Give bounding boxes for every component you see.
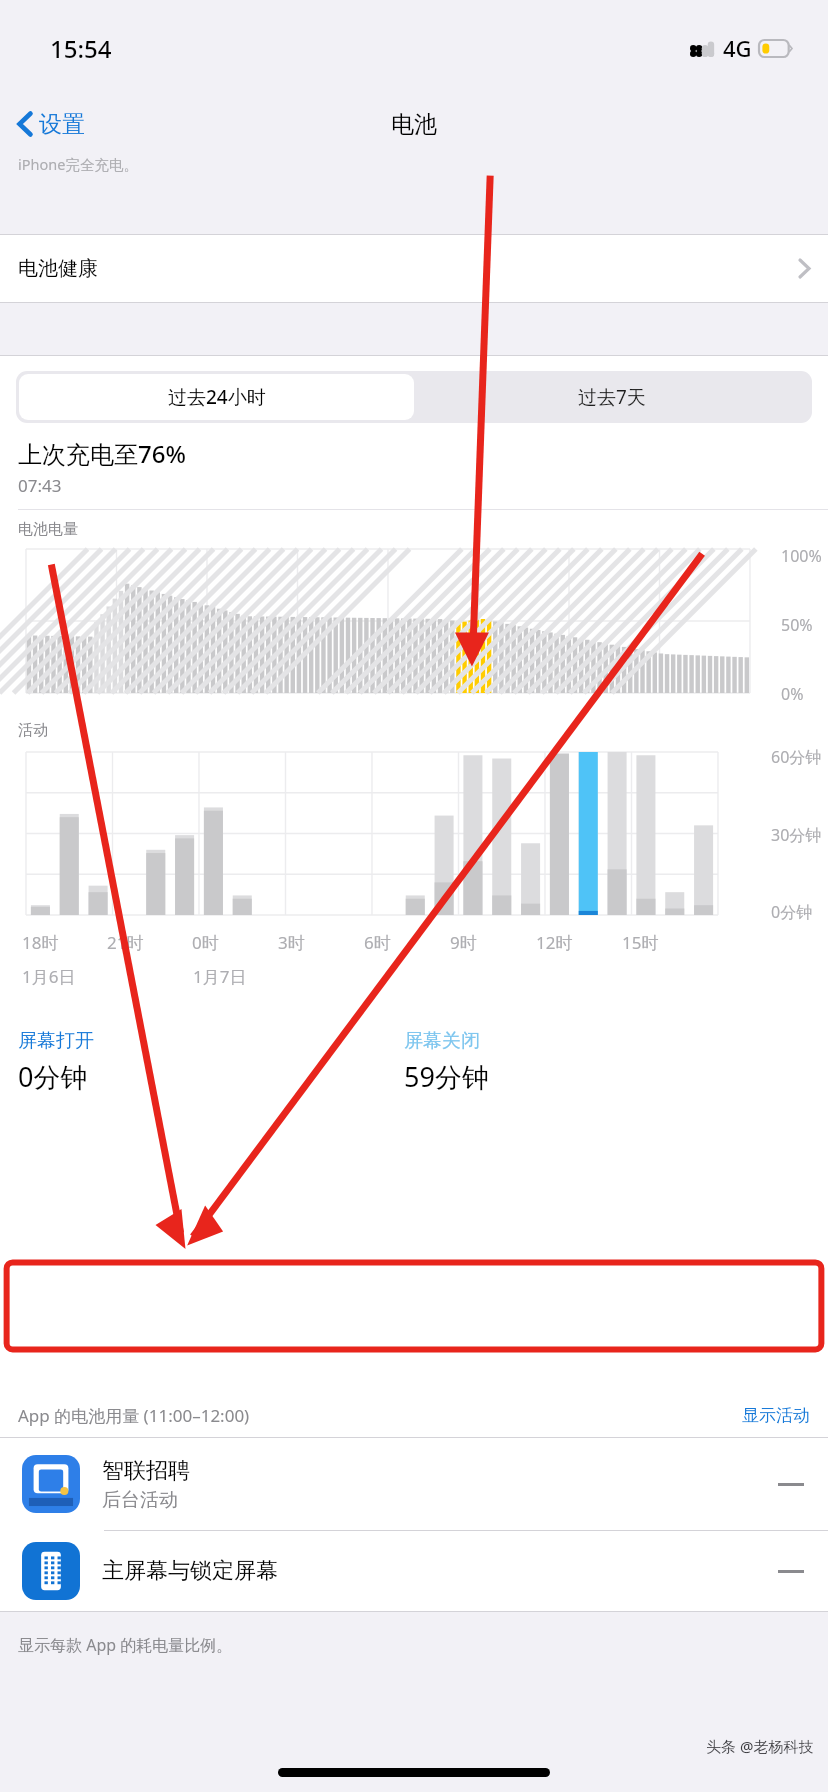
staticText: 电池电量 bbox=[18, 520, 78, 539]
staticText: 0时 bbox=[192, 931, 219, 954]
staticText: 智联招聘 bbox=[102, 1457, 190, 1485]
button[interactable]: 主屏幕与锁定屏幕 bbox=[0, 1531, 828, 1611]
staticText: 50% bbox=[781, 614, 813, 636]
staticText: 电池健康 bbox=[18, 256, 98, 281]
staticText: 15时 bbox=[622, 931, 659, 954]
button[interactable]: 设置 bbox=[0, 88, 95, 160]
staticText: 过去7天 bbox=[578, 384, 646, 410]
staticText: 59分钟 bbox=[404, 1058, 489, 1095]
staticText: 屏幕关闭 bbox=[404, 1029, 480, 1053]
staticText: 3时 bbox=[278, 931, 305, 954]
staticText: iPhone完全充电。 bbox=[18, 154, 138, 174]
staticText: 1月7日 bbox=[193, 965, 247, 988]
staticText: 显示每款 App 的耗电量比例。 bbox=[18, 1634, 233, 1656]
staticText: 18时 bbox=[22, 931, 59, 954]
staticText: 9时 bbox=[450, 931, 477, 954]
staticText: 1月6日 bbox=[22, 965, 76, 988]
staticText: 6时 bbox=[364, 931, 391, 954]
button[interactable]: 智联招聘 bbox=[0, 1438, 828, 1530]
staticText: 60分钟 bbox=[771, 746, 822, 768]
staticText: 21时 bbox=[107, 931, 144, 954]
staticText: 上次充电至76% bbox=[18, 437, 186, 470]
staticText: 活动 bbox=[18, 721, 48, 740]
button[interactable]: 显示活动 bbox=[742, 1405, 810, 1426]
staticText: 显示活动 bbox=[742, 1405, 810, 1426]
staticText: App 的电池用量 (11:00–12:00) bbox=[18, 1404, 250, 1427]
staticText: 15:54 bbox=[50, 32, 112, 65]
staticText: 后台活动 bbox=[102, 1488, 178, 1512]
staticText: 电池 bbox=[391, 110, 437, 139]
staticText: 过去24小时 bbox=[168, 384, 266, 410]
staticText: 屏幕打开 bbox=[18, 1029, 94, 1053]
staticText: 0分钟 bbox=[771, 901, 813, 923]
staticText: 头条 @老杨科技 bbox=[706, 1736, 814, 1756]
staticText: 0分钟 bbox=[18, 1058, 88, 1095]
staticText: 100% bbox=[781, 545, 822, 567]
button[interactable]: 电池健康 bbox=[0, 235, 828, 302]
staticText: 07:43 bbox=[18, 474, 62, 497]
staticText: 0% bbox=[781, 683, 804, 705]
staticText: 4G bbox=[723, 33, 752, 63]
button[interactable]: 过去24小时 bbox=[19, 374, 414, 420]
staticText: 30分钟 bbox=[771, 824, 822, 846]
staticText: 设置 bbox=[39, 110, 85, 139]
staticText: 12时 bbox=[536, 931, 573, 954]
staticText: 主屏幕与锁定屏幕 bbox=[102, 1557, 278, 1585]
button[interactable]: 过去7天 bbox=[414, 374, 809, 420]
